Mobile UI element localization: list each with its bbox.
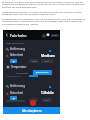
staticText: Sicherheit [10, 53, 24, 57]
staticText: Medium [41, 53, 55, 58]
button[interactable]: Ja [10, 59, 17, 63]
staticText: Ja [13, 97, 15, 100]
other: Bookmark [46, 33, 50, 37]
staticText: Ja [13, 60, 15, 63]
staticText: Entfernung [10, 47, 25, 51]
button[interactable]: Sicherheit [6, 53, 36, 57]
button[interactable]: Entfernung [6, 84, 36, 88]
staticText: JETZT [52, 34, 58, 37]
other: Back [5, 33, 9, 37]
staticText: Sicherheit [10, 91, 24, 95]
button[interactable]: Entfernung [6, 47, 36, 51]
staticText: T-Mobile [41, 91, 54, 95]
button[interactable]: Mehr [41, 59, 53, 63]
staticText: ÜBER DIESE SEITE [6, 42, 24, 45]
staticText: Temperatur [11, 65, 27, 69]
button[interactable] [3, 30, 60, 40]
button[interactable]: Profile [42, 34, 46, 38]
staticText: Fahrbahn [10, 33, 27, 38]
button[interactable]: Mehr [41, 98, 52, 102]
staticText: Fahrbahn und Strassenbelag sind ein wich… [2, 17, 87, 26]
button[interactable]: Nein [29, 98, 38, 102]
button[interactable]: JETZT [51, 34, 59, 37]
button[interactable]: Nein [29, 59, 39, 63]
staticText: Die Ergebnisse werden in Echtzeit darges… [2, 10, 87, 16]
button[interactable]: Alle akzeptieren [3, 107, 60, 114]
staticText: Das werden [16, 72, 29, 75]
staticText: Jetzt starten [36, 71, 49, 74]
button[interactable]: Temperatur [6, 65, 36, 69]
staticText: In diesem Abschnitt wird beschrieben wie… [2, 0, 87, 9]
staticText: Entfernung [10, 84, 25, 88]
staticText: Mehr [44, 99, 50, 102]
staticText: Nein [32, 60, 37, 63]
staticText: Nein [31, 99, 36, 102]
staticText: Mehr [44, 60, 50, 63]
staticText: Alle akzeptieren [22, 109, 42, 113]
button[interactable]: Jetzt starten [33, 70, 52, 75]
button[interactable]: Ja [10, 96, 17, 100]
button[interactable]: Sicherheit [6, 91, 36, 95]
